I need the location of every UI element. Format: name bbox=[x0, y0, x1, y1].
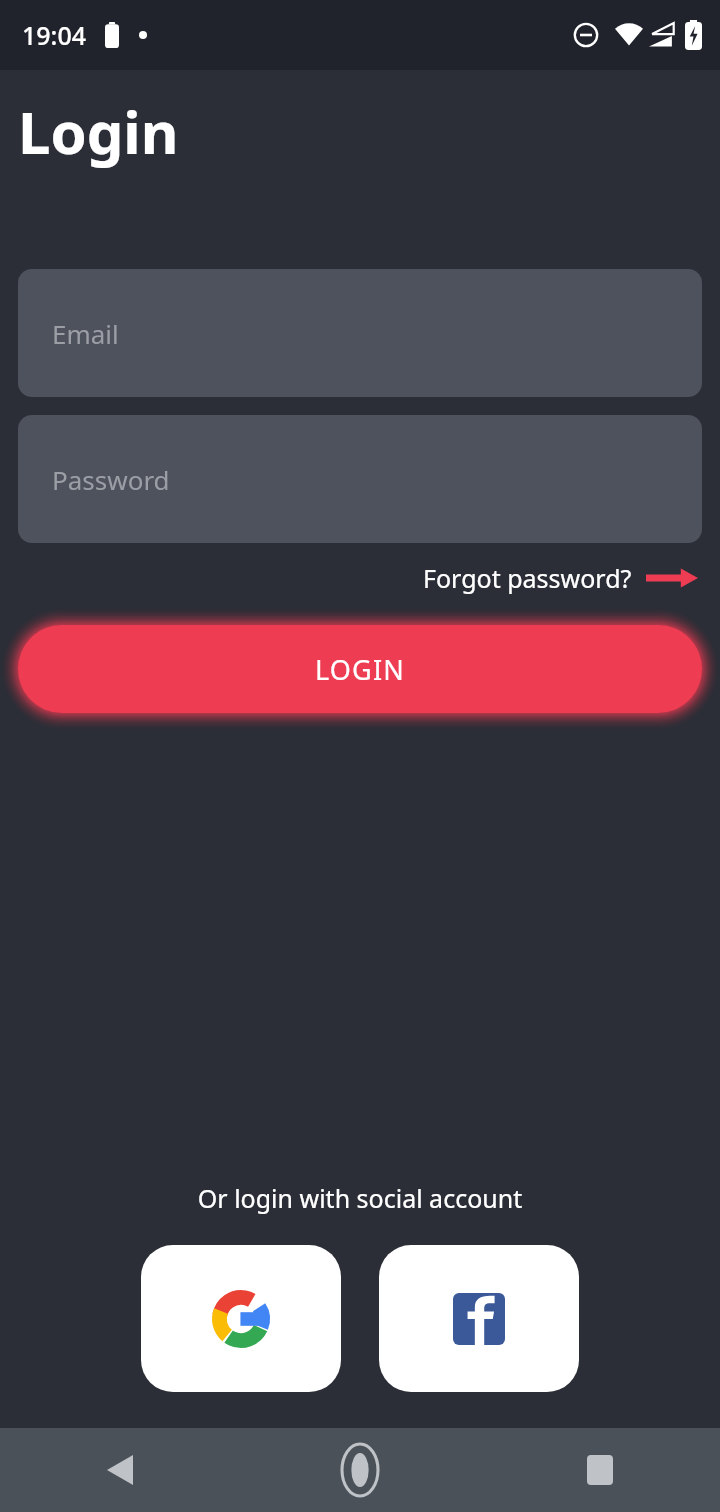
staticText: Or login with social account bbox=[0, 1181, 720, 1215]
button[interactable]: LOGIN bbox=[18, 625, 702, 713]
button[interactable]: Sign in with Google bbox=[141, 1245, 341, 1392]
button[interactable]: Password bbox=[18, 415, 702, 543]
button[interactable]: Sign in with Facebook bbox=[379, 1245, 579, 1392]
staticText: LOGIN bbox=[315, 651, 406, 688]
staticText: Login bbox=[18, 92, 179, 171]
staticText: Forgot password? bbox=[423, 561, 632, 595]
button[interactable]: Email bbox=[18, 269, 702, 397]
button[interactable]: Forgot password? bbox=[419, 555, 702, 601]
staticText: 19:04 bbox=[22, 18, 87, 52]
staticText: Email bbox=[52, 316, 119, 351]
button[interactable]: Back bbox=[0, 1428, 240, 1512]
other: Go to password recovery bbox=[646, 566, 698, 590]
button[interactable]: Recent apps bbox=[480, 1428, 720, 1512]
button[interactable]: Home bbox=[240, 1428, 480, 1512]
staticText: Password bbox=[52, 462, 170, 497]
